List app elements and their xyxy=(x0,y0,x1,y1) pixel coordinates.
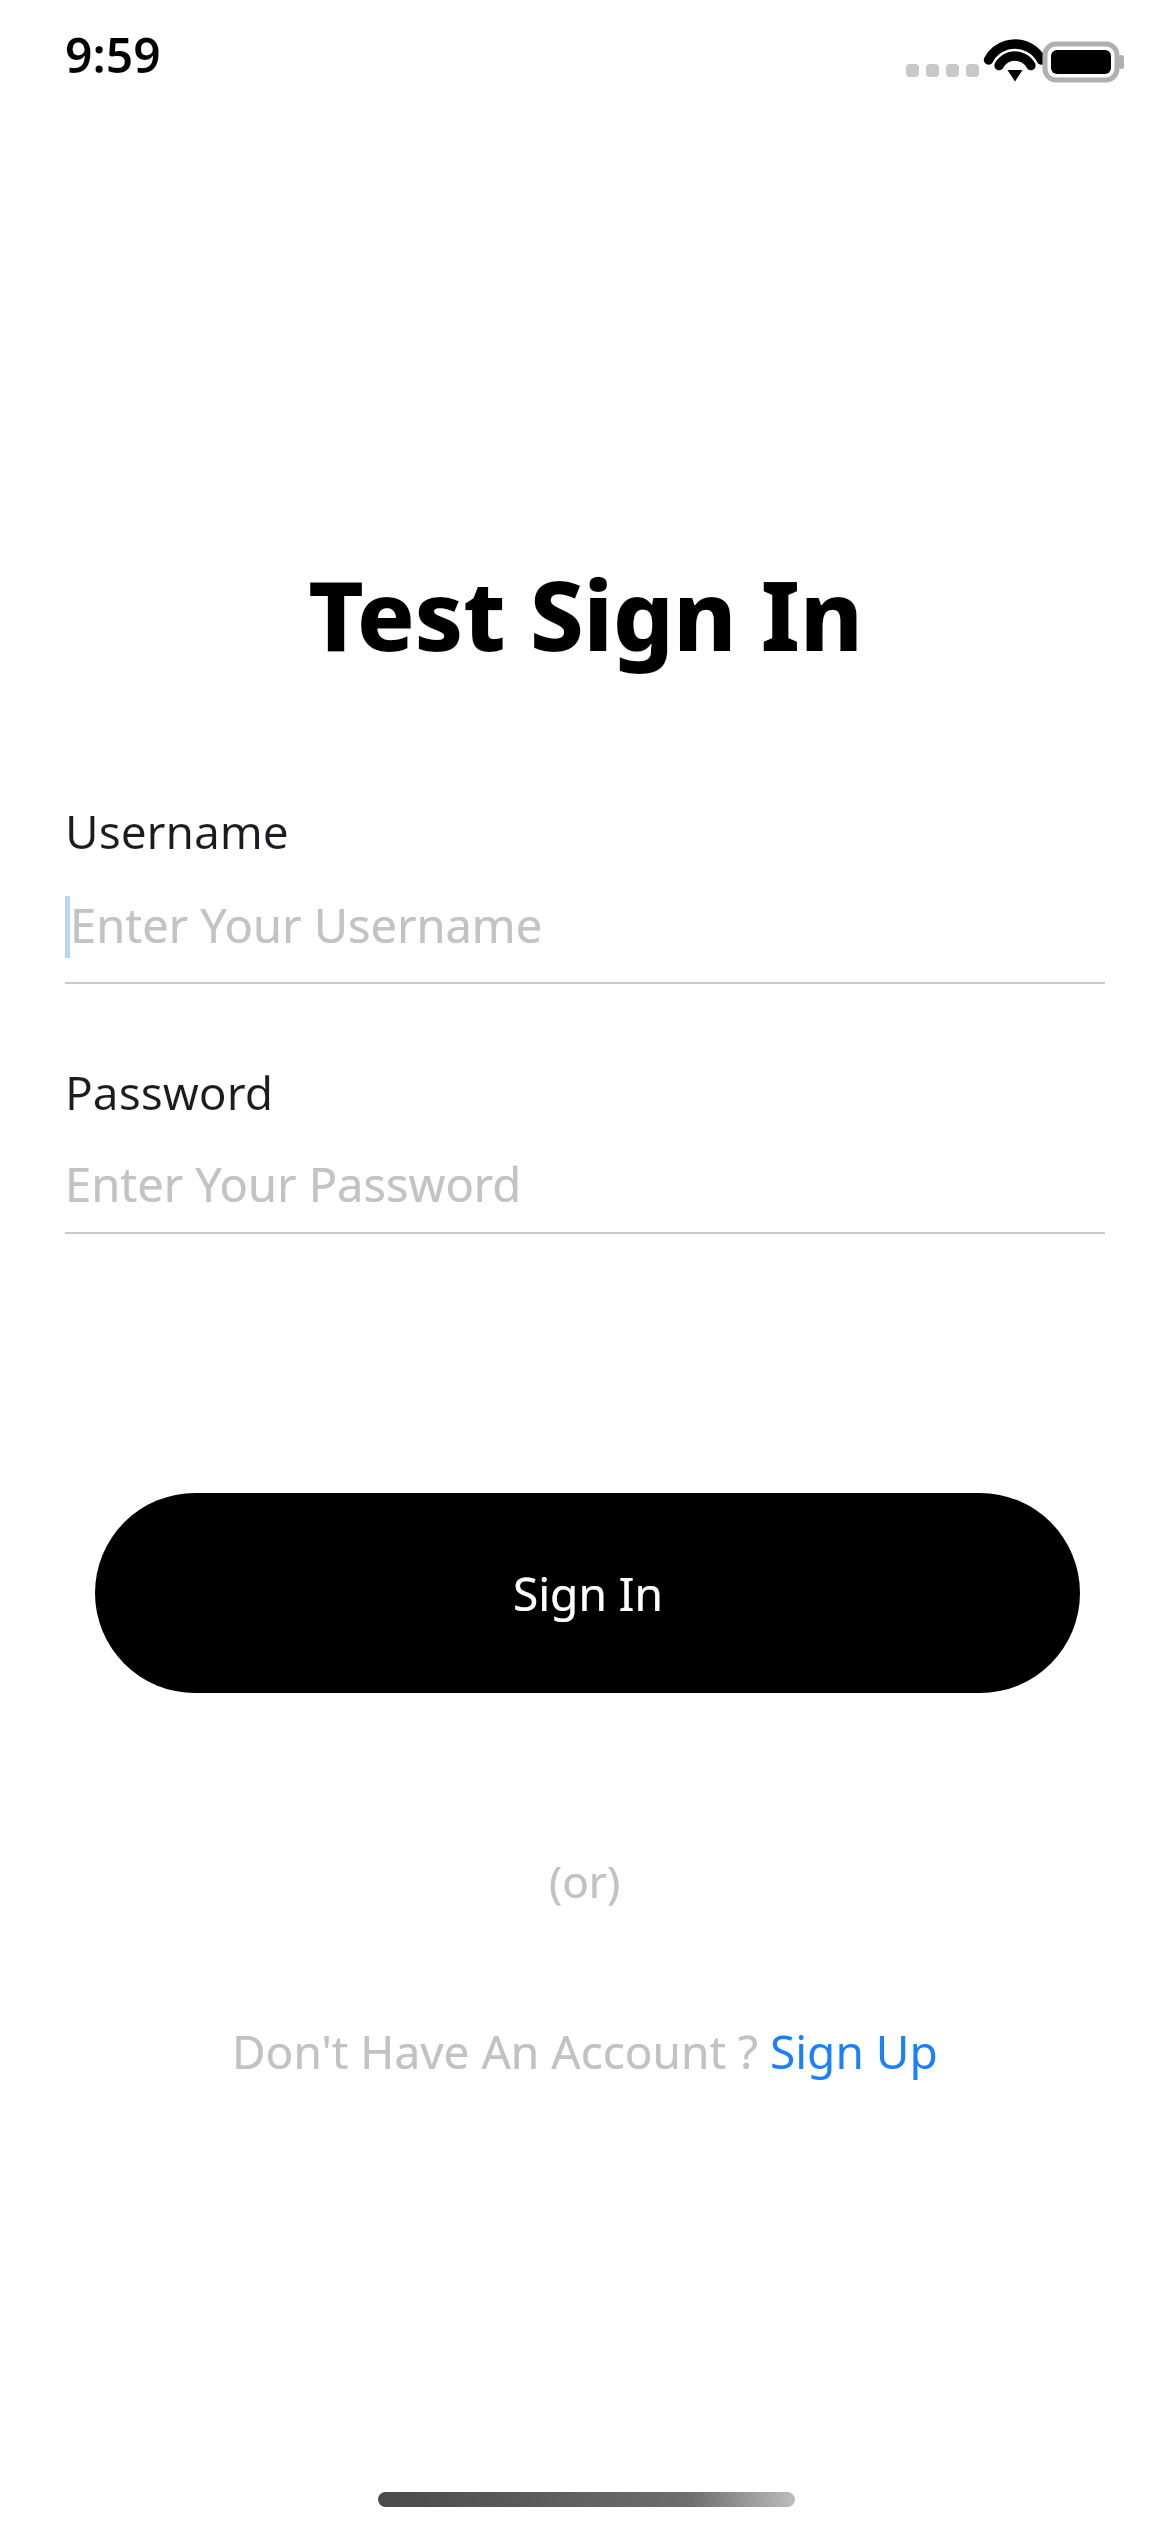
staticText: Username xyxy=(65,800,289,863)
button[interactable]: Sign Up xyxy=(770,2020,938,2083)
staticText: (or) xyxy=(549,1851,621,1911)
staticText: Sign Up xyxy=(770,2020,938,2083)
staticText: Test Sign In xyxy=(308,548,863,679)
staticText: Sign In xyxy=(513,1562,663,1625)
staticText: Don't Have An Account ? xyxy=(232,2020,770,2083)
staticText: Enter Your Username xyxy=(70,893,543,957)
button[interactable]: Enter Your Username xyxy=(65,873,1105,983)
staticText: Password xyxy=(65,1061,274,1124)
button[interactable]: Enter Your Password xyxy=(65,1132,1105,1242)
staticText: 9:59 xyxy=(65,22,161,87)
staticText: Enter Your Password xyxy=(65,1152,522,1216)
button[interactable]: Sign In xyxy=(95,1493,1080,1693)
